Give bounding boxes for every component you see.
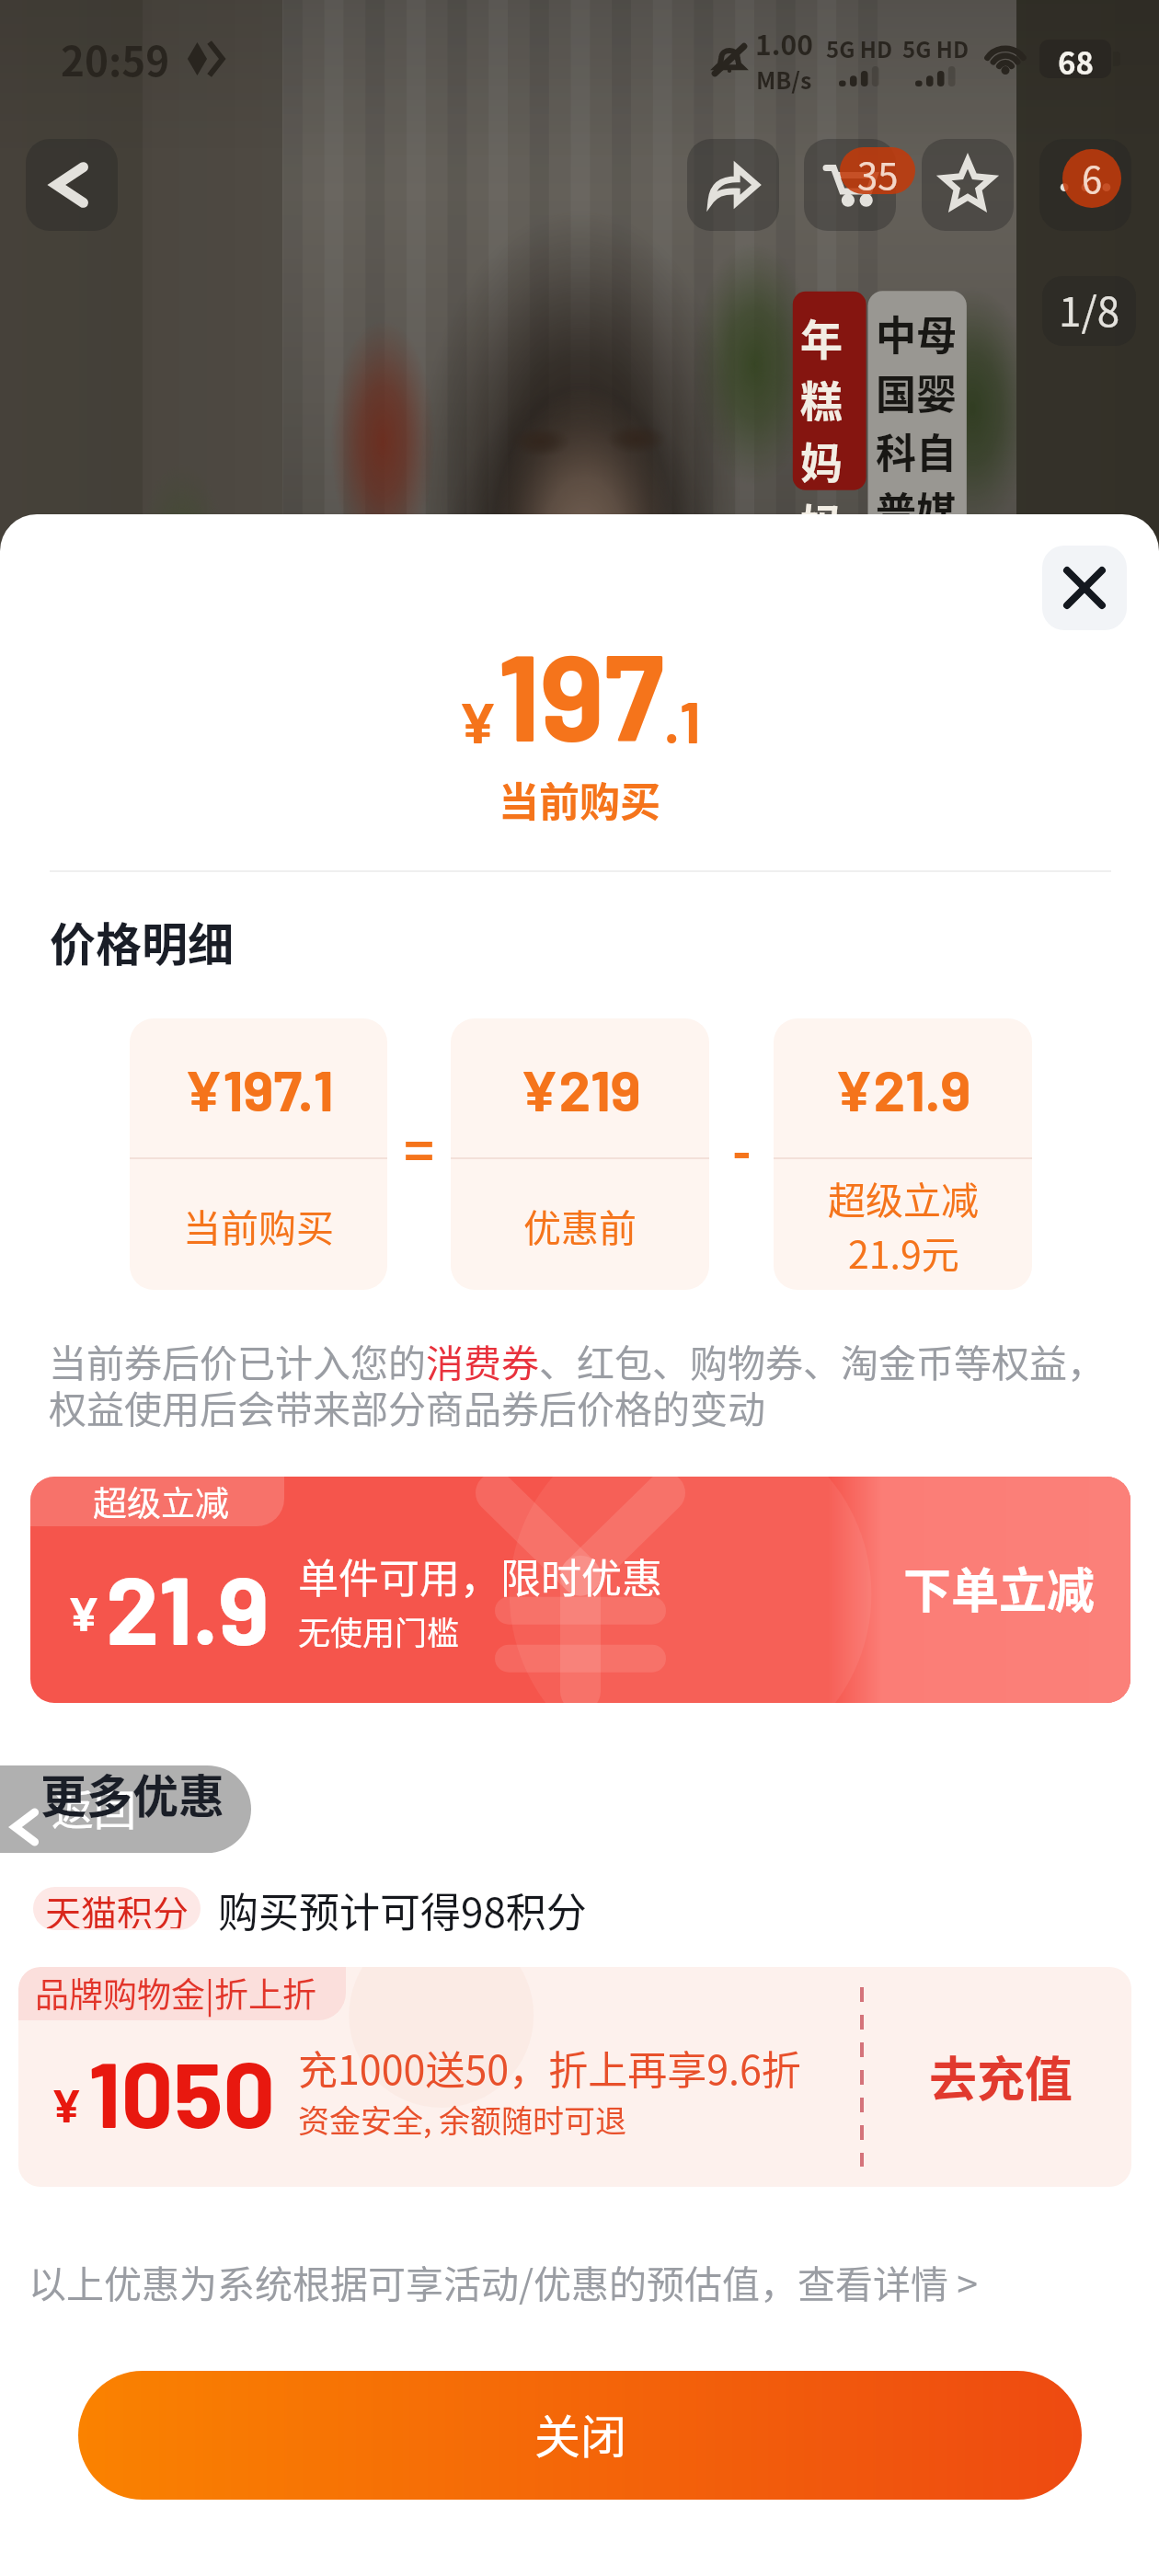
staticText: 价格明细	[50, 908, 234, 974]
staticText: 5G HD	[902, 32, 970, 64]
staticText: 国	[876, 362, 916, 421]
staticText: 充1000送50，折上再享9.6折	[298, 2039, 801, 2096]
staticText: 68	[1058, 40, 1094, 76]
staticText: 母	[916, 304, 957, 362]
button[interactable]: 关闭	[78, 2371, 1082, 2500]
button[interactable]: 品牌购物金|折上折	[18, 1967, 1131, 2187]
staticText: 媒	[916, 480, 957, 539]
button[interactable]: 超级立减	[30, 1477, 1130, 1703]
staticText: 197	[498, 621, 664, 765]
staticText: -	[732, 1110, 752, 1185]
staticText: =	[404, 1110, 435, 1185]
staticText: 中	[876, 304, 916, 362]
staticText: 返回	[52, 1777, 136, 1838]
button[interactable]: Favorite	[922, 139, 1014, 231]
button[interactable]: 1/8	[1042, 276, 1136, 346]
staticText: 天猫积分	[45, 1887, 189, 1928]
staticText: .1	[664, 685, 701, 755]
staticText: ¥	[67, 1583, 100, 1640]
button[interactable]: 以上优惠为系统根据可享活动/优惠的预估值，查看详情 >	[29, 2254, 979, 2308]
staticText: 去充值	[929, 2041, 1073, 2110]
staticText: 下单立减	[903, 1553, 1096, 1622]
staticText: ¥197.1	[184, 1054, 334, 1122]
staticText: 35	[857, 147, 899, 191]
staticText: 购买预计可得98积分	[218, 1880, 587, 1939]
staticText: 当前券后价已计入您的消费券、红包、购物券、淘金币等权益， 权益使用后会带来部分商…	[49, 1333, 1105, 1434]
staticText: 婴	[916, 362, 957, 421]
staticText: 更多优惠	[40, 1760, 224, 1826]
staticText: 品牌购物金|折上折	[35, 1968, 316, 2018]
staticText: 21.9	[106, 1549, 270, 1664]
button[interactable]: Close	[1042, 546, 1127, 630]
staticText: 优惠前	[523, 1198, 637, 1252]
staticText: 当前购买	[183, 1198, 334, 1252]
staticText: ¥21.9	[834, 1054, 971, 1122]
staticText: 普	[876, 480, 916, 539]
staticText: 1.00	[755, 23, 813, 63]
staticText: 妈	[800, 430, 843, 491]
button[interactable]: Share	[687, 139, 779, 231]
staticText: 单件可用，限时优惠	[298, 1547, 662, 1605]
staticText: 无使用门槛	[298, 1607, 460, 1654]
staticText: 自	[916, 421, 957, 480]
staticText: 科	[876, 421, 916, 480]
staticText: 超级立减	[828, 1170, 979, 1225]
button[interactable]: Back	[26, 139, 118, 231]
staticText: 糕	[800, 368, 843, 430]
button[interactable]: More	[1039, 139, 1131, 231]
staticText: ¥219	[520, 1054, 641, 1122]
staticText: 6	[1082, 151, 1103, 204]
staticText: 资金安全, 余额随时可退	[298, 2097, 627, 2142]
staticText: 1/8	[1059, 280, 1120, 339]
staticText: ¥	[458, 686, 498, 754]
staticText: ¥	[51, 2076, 83, 2132]
staticText: 20:59	[61, 29, 170, 88]
button[interactable]: Cart	[804, 139, 896, 231]
staticText: 1050	[88, 2036, 276, 2146]
button[interactable]: 天猫积分	[33, 1887, 201, 1930]
staticText: 5G HD	[826, 32, 893, 64]
staticText: 妈	[800, 491, 843, 553]
staticText: 超级立减	[93, 1477, 229, 1524]
staticText: MB/s	[756, 63, 812, 96]
button[interactable]: 返回	[0, 1765, 251, 1853]
staticText: 年	[800, 306, 843, 368]
staticText: 关闭	[534, 2400, 626, 2467]
staticText: 当前购买	[0, 770, 1159, 829]
staticText: 21.9元	[848, 1225, 959, 1279]
